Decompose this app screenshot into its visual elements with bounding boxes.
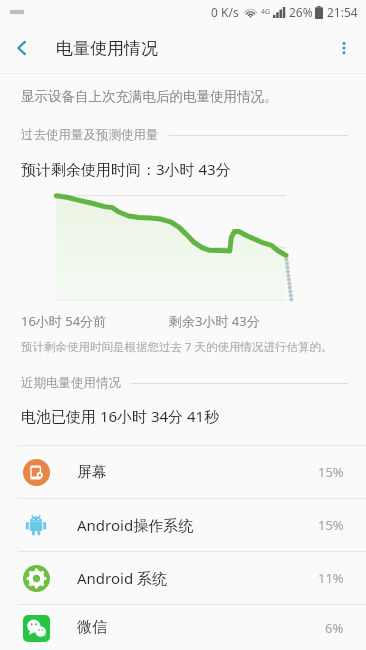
staticText: 微信 bbox=[77, 618, 107, 637]
staticText: 显示设备自上次充满电后的电量使用情况。 bbox=[21, 88, 278, 105]
button[interactable]: 屏幕 bbox=[0, 446, 366, 498]
button[interactable]: Android 系统 bbox=[0, 552, 366, 604]
staticText: 11% bbox=[318, 569, 344, 587]
button[interactable]: 微信 bbox=[0, 605, 366, 650]
staticText: 4G bbox=[261, 7, 271, 17]
staticText: 16小时 54分前 bbox=[21, 312, 107, 330]
staticText: 电量使用情况 bbox=[56, 38, 158, 59]
staticText: Android操作系统 bbox=[77, 515, 194, 535]
staticText: 预计剩余使用时间是根据您过去 7 天的使用情况进行估算的。 bbox=[21, 339, 333, 355]
button[interactable]: Back bbox=[0, 26, 44, 70]
staticText: 15% bbox=[318, 516, 344, 534]
staticText: 近期电量使用情况 bbox=[21, 375, 121, 391]
staticText: 6% bbox=[325, 619, 344, 637]
button[interactable]: Android操作系统 bbox=[0, 499, 366, 551]
staticText: 21:54 bbox=[327, 4, 358, 20]
staticText: 过去使用量及预测使用量 bbox=[21, 127, 159, 143]
staticText: 剩余3小时 43分 bbox=[169, 312, 260, 330]
staticText: 预计剩余使用时间：3小时 43分 bbox=[21, 159, 231, 179]
staticText: 15% bbox=[318, 463, 344, 481]
staticText: 屏幕 bbox=[77, 463, 107, 482]
staticText: 0 K/s bbox=[211, 4, 239, 20]
staticText: Android 系统 bbox=[77, 568, 168, 588]
staticText: 电池已使用 16小时 34分 41秒 bbox=[21, 406, 220, 426]
staticText: 26% bbox=[289, 4, 313, 20]
button[interactable]: More options bbox=[322, 26, 366, 70]
